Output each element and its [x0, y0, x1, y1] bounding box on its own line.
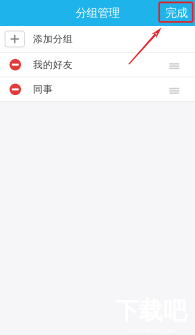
staticText: 下载吧 [115, 296, 187, 326]
button[interactable]: 添加分组 [0, 26, 195, 52]
button[interactable]: 删除 同事 [5, 77, 26, 101]
button[interactable]: 重新排序 同事 [162, 77, 186, 101]
button[interactable]: 完成 [159, 3, 194, 22]
staticText: 同事 [33, 83, 53, 95]
button[interactable]: 重新排序 我的好友 [162, 53, 186, 77]
button[interactable]: 我的好友 [0, 53, 195, 77]
staticText: 添加分组 [33, 33, 73, 45]
button[interactable]: 同事 [0, 77, 195, 101]
staticText: 我的好友 [33, 59, 73, 71]
staticText: 分组管理 [75, 6, 119, 20]
staticText: 完成 [165, 6, 187, 20]
button[interactable]: 删除 我的好友 [5, 53, 26, 77]
